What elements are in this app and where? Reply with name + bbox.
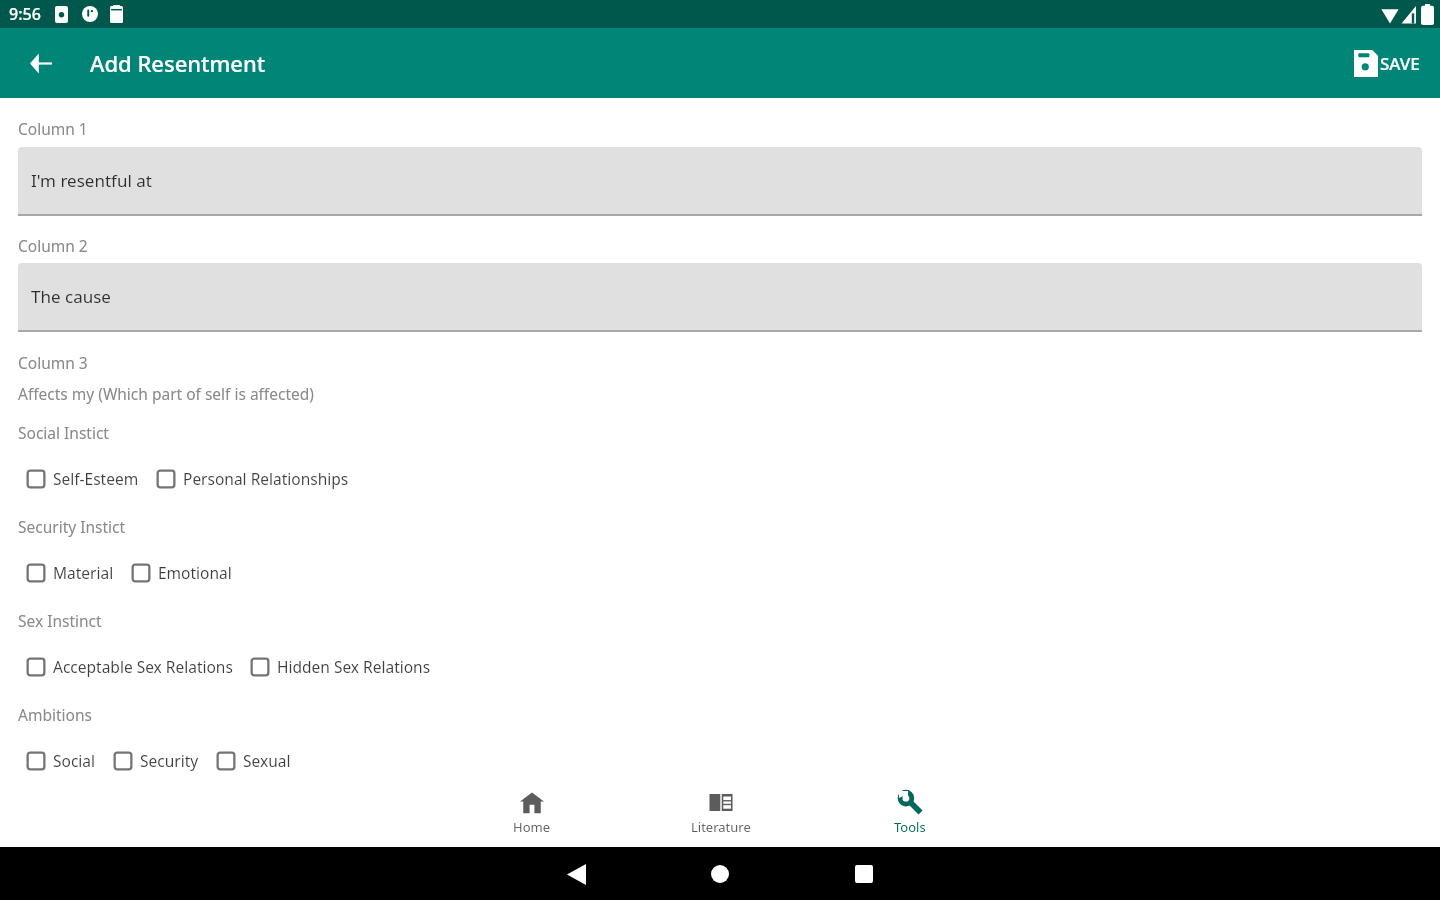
button[interactable]: Social [26, 745, 96, 776]
staticText: Social Instict [18, 422, 109, 443]
staticText: Home [513, 818, 550, 836]
button[interactable]: Hidden Sex Relations [250, 651, 431, 682]
staticText: Security [140, 750, 199, 771]
button[interactable]: Self-Esteem [26, 463, 139, 494]
staticText: Acceptable Sex Relations [53, 656, 233, 677]
button[interactable]: Home [696, 850, 744, 898]
staticText: Material [53, 562, 114, 583]
staticText: Add Resentment [90, 48, 266, 78]
staticText: Column 1 [18, 118, 88, 139]
button[interactable]: Security [113, 745, 199, 776]
staticText: Column 2 [18, 235, 88, 256]
staticText: Column 3 [18, 352, 88, 373]
staticText: The cause [31, 285, 111, 308]
staticText: Emotional [158, 562, 232, 583]
button[interactable]: Personal Relationships [156, 463, 349, 494]
button[interactable]: Navigate back [17, 39, 65, 87]
staticText: SAVE [1380, 52, 1420, 75]
staticText: Hidden Sex Relations [277, 656, 431, 677]
button[interactable]: Recent apps [840, 850, 888, 898]
staticText: I'm resentful at [31, 169, 152, 192]
button[interactable]: I'm resentful at [18, 147, 1422, 214]
button[interactable]: Home [437, 785, 626, 842]
button[interactable]: Material [26, 557, 114, 588]
button[interactable]: Literature [626, 785, 815, 842]
button[interactable]: Tools [815, 785, 1004, 842]
button[interactable]: Back [552, 850, 600, 898]
button[interactable]: Sexual [216, 745, 291, 776]
staticText: Social [53, 750, 96, 771]
staticText: Self-Esteem [53, 468, 139, 489]
staticText: Sexual [243, 750, 291, 771]
staticText: Sex Instinct [18, 610, 102, 631]
staticText: Affects my (Which part of self is affect… [18, 383, 314, 404]
staticText: 9:56 [9, 3, 41, 25]
staticText: Personal Relationships [183, 468, 349, 489]
staticText: Security Instict [18, 516, 126, 537]
button[interactable]: Acceptable Sex Relations [26, 651, 233, 682]
button[interactable]: Emotional [131, 557, 232, 588]
button[interactable]: SAVE [1344, 42, 1434, 85]
staticText: Tools [894, 818, 926, 836]
staticText: Ambitions [18, 704, 92, 725]
button[interactable]: The cause [18, 263, 1422, 330]
staticText: Literature [691, 818, 751, 836]
